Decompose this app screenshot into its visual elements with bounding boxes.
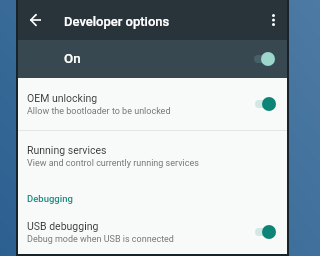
staticText: Running services (27, 144, 107, 156)
staticText: USB debugging (27, 220, 99, 232)
staticText: Debug mode when USB is connected (27, 234, 174, 245)
button[interactable]: More options (259, 0, 287, 40)
staticText: Allow the bootloader to be unlocked (27, 106, 171, 117)
staticText: View and control currently running servi… (27, 158, 199, 169)
staticText: On (64, 51, 81, 67)
button[interactable]: On (18, 40, 287, 78)
staticText: Developer options (64, 14, 170, 29)
button[interactable]: Navigate up (19, 0, 51, 40)
button[interactable]: USB debugging (18, 210, 287, 254)
staticText: OEM unlocking (27, 92, 98, 104)
button[interactable]: OEM unlocking (18, 78, 287, 130)
button[interactable]: Running services (18, 131, 287, 181)
staticText: Debugging (27, 193, 73, 204)
